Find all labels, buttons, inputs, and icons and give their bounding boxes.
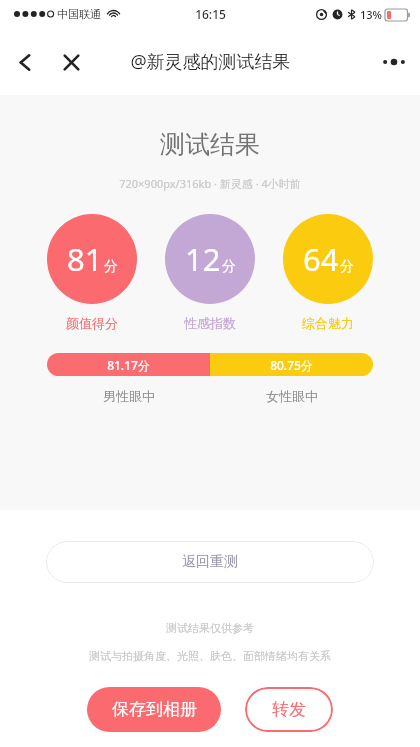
button[interactable]: More options [374, 42, 414, 82]
staticText: 性感指数 [184, 315, 236, 331]
staticText: 81.17分 [107, 357, 150, 373]
staticText: 720×900px/316kb · 新灵感 · 4小时前 [119, 176, 301, 191]
staticText: 12 [185, 238, 221, 280]
staticText: 测试与拍摄角度、光照、肤色、面部情绪均有关系 [0, 649, 420, 663]
button[interactable]: 返回重测 [46, 541, 374, 583]
button[interactable]: 保存到相册 [87, 687, 221, 732]
staticText: 男性眼中 [103, 388, 155, 404]
staticText: 转发 [272, 699, 306, 720]
staticText: 16:15 [195, 6, 226, 22]
staticText: 综合魅力 [302, 315, 354, 331]
staticText: 测试结果仅供参考 [0, 621, 420, 635]
staticText: 13% [360, 7, 382, 22]
button[interactable]: Back [6, 43, 44, 81]
staticText: @新灵感的测试结果 [130, 49, 291, 74]
staticText: 分 [340, 258, 354, 276]
staticText: 80.75分 [270, 357, 313, 373]
staticText: 女性眼中 [266, 388, 318, 404]
staticText: 测试结果 [160, 129, 260, 160]
staticText: 81 [67, 238, 103, 280]
staticText: 分 [222, 258, 236, 276]
staticText: 中国联通 [57, 7, 101, 21]
staticText: 返回重测 [182, 553, 238, 571]
staticText: 保存到相册 [112, 699, 197, 720]
staticText: 64 [303, 238, 339, 280]
staticText: 颜值得分 [66, 315, 118, 331]
button[interactable]: Close [52, 43, 90, 81]
staticText: 分 [104, 258, 118, 276]
button[interactable]: 转发 [245, 687, 333, 732]
